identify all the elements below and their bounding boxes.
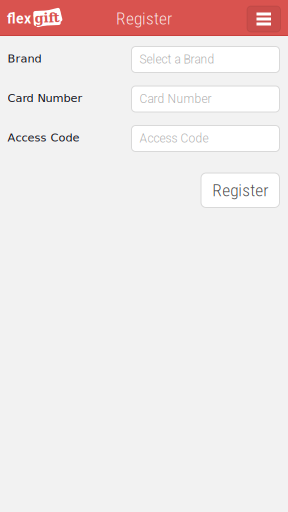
staticText: Select a Brand bbox=[139, 52, 214, 67]
button[interactable]: Card Number bbox=[131, 86, 279, 112]
button[interactable]: Access Code bbox=[131, 125, 279, 151]
staticText: Card Number bbox=[7, 91, 82, 105]
staticText: gift bbox=[34, 11, 59, 25]
button[interactable]: Register bbox=[201, 173, 279, 207]
staticText: Access Code bbox=[7, 131, 79, 144]
staticText: Access Code bbox=[139, 131, 208, 146]
staticText: Card Number bbox=[139, 92, 211, 106]
button[interactable]: Open menu bbox=[247, 4, 280, 30]
staticText: Register bbox=[212, 180, 268, 200]
staticText: flex bbox=[7, 10, 31, 27]
button[interactable]: Select a Brand bbox=[131, 46, 279, 72]
staticText: Brand bbox=[7, 52, 41, 65]
staticText: Register bbox=[116, 8, 172, 29]
